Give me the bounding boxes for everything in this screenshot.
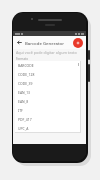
button[interactable]: ITF [15,106,80,115]
button[interactable]: EAN_8 [15,97,80,106]
staticText: Barcode Generator [25,40,73,46]
button[interactable]: EAN_13 [15,88,80,97]
staticText: CODE_128 [18,72,35,77]
button[interactable]: PDF_417 [15,115,80,124]
button[interactable]: Back [15,38,24,47]
staticText: PDF_417 [18,117,32,122]
staticText: ITF [18,108,23,113]
button[interactable]: Add barcode [73,38,83,48]
staticText: EAN_8 [18,99,29,104]
staticText: CODE_39 [18,81,33,86]
button[interactable]: BARCODE [15,61,80,70]
staticText: UPC_A [18,126,29,131]
button[interactable]: Aqui você pode digitar algum texto [13,49,86,56]
staticText: Aqui você pode digitar algum texto [16,50,77,55]
button[interactable]: CODE_39 [15,79,80,88]
button[interactable]: UPC_A [15,124,80,132]
staticText: EAN_13 [18,90,31,95]
staticText: BARCODE [18,63,34,68]
button[interactable]: CODE_128 [15,70,80,79]
staticText: Formato [16,57,28,61]
